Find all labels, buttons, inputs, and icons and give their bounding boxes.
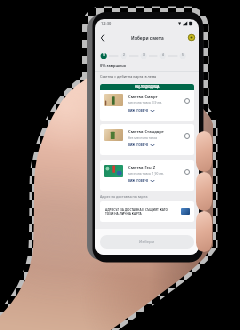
staticText: Адрес за доставка на карта [100, 194, 148, 199]
button[interactable]: НАЈ-ПОДХОДЯЩА [100, 84, 194, 121]
staticText: Избери [139, 239, 155, 245]
button[interactable]: ВИЖ ПОВЕЧЕ [128, 179, 154, 183]
button[interactable]: ВИЖ ПОВЕЧЕ [128, 109, 154, 113]
staticText: без месечна такса [128, 135, 158, 139]
button[interactable]: 1 [101, 52, 107, 58]
staticText: НАЈ-ПОДХОДЯЩА [135, 85, 160, 89]
button[interactable]: 5 [180, 52, 186, 58]
button[interactable]: ВИЖ ПОВЕЧЕ [128, 143, 154, 147]
staticText: ВИЖ ПОВЕЧЕ [128, 109, 149, 113]
button[interactable]: Select Сметка Стандарт [183, 132, 191, 140]
staticText: Сметка Стандарт [128, 129, 164, 135]
staticText: 0% завршено [100, 63, 127, 68]
button[interactable]: Сметка Ген Z [100, 160, 194, 191]
button[interactable]: Card [181, 208, 190, 215]
button[interactable]: Profile [186, 31, 197, 44]
button[interactable]: Select Сметка Смарт [183, 97, 191, 105]
staticText: 1 [103, 53, 105, 57]
staticText: ВИЖ ПОВЕЧЕ [128, 143, 149, 147]
button[interactable]: 2 [121, 52, 127, 58]
staticText: Сметка с дебитна карта в лева [100, 74, 157, 79]
staticText: 12:30 [101, 21, 112, 26]
button[interactable]: Избери [100, 235, 194, 249]
button[interactable]: АДРЕСЪТ ЗА ДОСТАВКА Е СЪЩИЯТ КАТО [100, 201, 194, 222]
button[interactable]: 3 [141, 52, 147, 58]
button[interactable]: Back [97, 31, 108, 44]
staticText: Избери смета [131, 35, 164, 41]
staticText: Сметка Ген Z [128, 165, 156, 171]
staticText: 5 [182, 53, 184, 57]
staticText: ТОЗИ НА ЛИЧНА КАРТА [105, 212, 142, 216]
staticText: месечна такса 1,90 лв. [128, 171, 164, 175]
staticText: АДРЕСЪТ ЗА ДОСТАВКА Е СЪЩИЯТ КАТО [105, 208, 168, 212]
staticText: 4 [162, 53, 164, 57]
staticText: месечна такса 3.9 лв. [128, 100, 162, 104]
staticText: 3 [143, 53, 145, 57]
staticText: 2 [123, 53, 125, 57]
button[interactable]: Select Сметка Ген Z [183, 168, 191, 176]
staticText: Сметка Смарт [128, 94, 158, 100]
staticText: ВИЖ ПОВЕЧЕ [128, 179, 149, 183]
button[interactable]: Сметка Стандарт [100, 124, 194, 155]
button[interactable]: 4 [160, 52, 166, 58]
